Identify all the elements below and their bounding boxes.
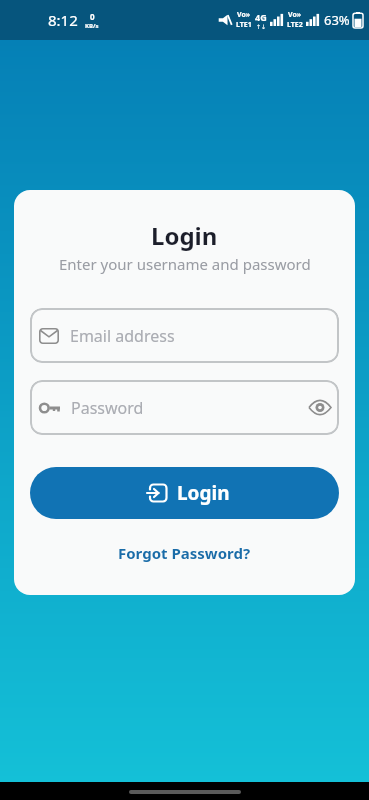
button[interactable]: Password (30, 380, 339, 435)
staticText: Vo» (237, 10, 251, 20)
staticText: Login (177, 480, 230, 506)
staticText: Email address (70, 325, 175, 347)
staticText: Login (151, 219, 218, 252)
staticText: KB/s (85, 22, 99, 30)
staticText: Password (71, 397, 144, 419)
staticText: 8:12 (48, 10, 78, 30)
staticText: LTE1 (236, 20, 252, 30)
staticText: LTE2 (287, 20, 303, 30)
staticText: Vo» (288, 10, 302, 20)
button[interactable]: Login (30, 467, 339, 519)
staticText: 0 (90, 11, 95, 22)
staticText: ↑↓ (256, 23, 267, 30)
button[interactable]: Forgot Password? (118, 543, 251, 563)
staticText: 63% (324, 11, 350, 29)
staticText: 4G (255, 11, 267, 23)
staticText: Enter your username and password (59, 254, 311, 274)
button[interactable]: Email address (30, 308, 339, 363)
